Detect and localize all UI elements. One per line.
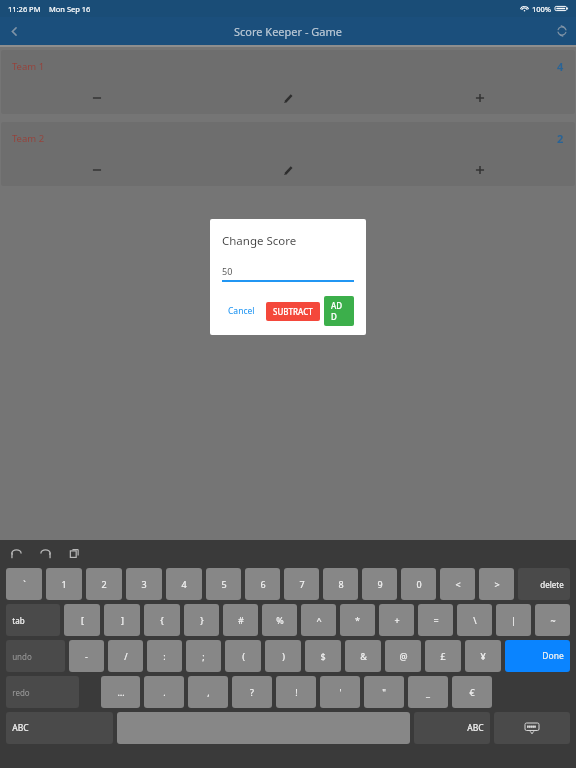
staticText: 50 bbox=[222, 265, 233, 277]
button[interactable]: Refresh bbox=[548, 17, 576, 45]
button[interactable]: $ bbox=[305, 640, 341, 672]
button[interactable]: £ bbox=[425, 640, 461, 672]
button[interactable]: 4 bbox=[166, 568, 202, 600]
button[interactable]: : bbox=[147, 640, 182, 672]
staticText: ; bbox=[202, 650, 205, 662]
button[interactable]: € bbox=[452, 676, 492, 708]
button[interactable]: 6 bbox=[245, 568, 280, 600]
button[interactable]: undo bbox=[6, 640, 65, 672]
button[interactable]: ] bbox=[104, 604, 140, 636]
staticText: delete bbox=[540, 579, 564, 590]
button[interactable]: ! bbox=[276, 676, 316, 708]
staticText: 6 bbox=[260, 578, 266, 590]
staticText: [ bbox=[81, 614, 84, 626]
staticText: 2 bbox=[101, 578, 107, 590]
button[interactable]: ' bbox=[320, 676, 360, 708]
button[interactable]: Done bbox=[505, 640, 570, 672]
button[interactable]: SUBTRACT bbox=[266, 302, 320, 321]
button[interactable]: ¥ bbox=[465, 640, 501, 672]
button[interactable]: 2 bbox=[86, 568, 122, 600]
button[interactable]: ABC bbox=[414, 712, 490, 744]
staticText: Team 2 bbox=[12, 132, 45, 145]
button[interactable]: } bbox=[184, 604, 219, 636]
staticText: % bbox=[276, 614, 284, 626]
staticText: { bbox=[160, 614, 164, 626]
staticText: $ bbox=[320, 650, 326, 662]
button[interactable]: @ bbox=[385, 640, 421, 672]
button[interactable]: { bbox=[144, 604, 180, 636]
staticText: 11:26 PM bbox=[8, 4, 41, 14]
staticText: ] bbox=[121, 614, 124, 626]
staticText: 3 bbox=[141, 578, 147, 590]
button[interactable]: + bbox=[379, 604, 414, 636]
button[interactable]: | bbox=[496, 604, 531, 636]
button[interactable]: * bbox=[340, 604, 375, 636]
button[interactable]: 5 bbox=[206, 568, 241, 600]
button[interactable]: > bbox=[479, 568, 514, 600]
button[interactable] bbox=[494, 712, 570, 744]
staticText: 5 bbox=[221, 578, 227, 590]
staticText: 100% bbox=[532, 4, 552, 14]
staticText: - bbox=[85, 650, 88, 662]
button[interactable]: ^ bbox=[301, 604, 336, 636]
button[interactable]: Edit bbox=[193, 82, 384, 114]
staticText: | bbox=[511, 614, 516, 626]
staticText: } bbox=[200, 614, 204, 626]
button[interactable]: " bbox=[364, 676, 404, 708]
button[interactable]: ? bbox=[232, 676, 272, 708]
staticText: , bbox=[207, 686, 210, 698]
button[interactable]: % bbox=[262, 604, 297, 636]
staticText: 8 bbox=[338, 578, 344, 590]
button[interactable]: 9 bbox=[362, 568, 397, 600]
button[interactable]: \ bbox=[457, 604, 492, 636]
button[interactable]: ( bbox=[225, 640, 261, 672]
button[interactable]: _ bbox=[408, 676, 448, 708]
button[interactable]: Add bbox=[384, 82, 575, 114]
staticText: ( bbox=[242, 650, 245, 662]
button[interactable]: 1 bbox=[46, 568, 82, 600]
button[interactable]: ABC bbox=[6, 712, 113, 744]
staticText: ^ bbox=[316, 614, 322, 626]
button[interactable]: 3 bbox=[126, 568, 162, 600]
button[interactable]: ) bbox=[265, 640, 301, 672]
button[interactable]: 8 bbox=[323, 568, 358, 600]
button[interactable]: , bbox=[188, 676, 228, 708]
button[interactable]: & bbox=[345, 640, 381, 672]
staticText: 4 bbox=[181, 578, 187, 590]
staticText: ADD bbox=[331, 300, 347, 322]
button[interactable]: # bbox=[223, 604, 258, 636]
staticText: ' bbox=[339, 686, 342, 698]
staticText: 7 bbox=[299, 578, 305, 590]
button[interactable]: . bbox=[144, 676, 184, 708]
button[interactable]: 0 bbox=[401, 568, 436, 600]
button[interactable]: 7 bbox=[284, 568, 319, 600]
staticText: . bbox=[163, 686, 166, 698]
staticText: tab bbox=[12, 615, 25, 626]
button[interactable]: ADD bbox=[324, 296, 354, 326]
button[interactable]: tab bbox=[6, 604, 60, 636]
button[interactable]: Back bbox=[0, 17, 28, 45]
button[interactable]: delete bbox=[518, 568, 570, 600]
button[interactable]: [ bbox=[64, 604, 100, 636]
button[interactable]: Cancel bbox=[222, 301, 261, 321]
button[interactable]: Add bbox=[384, 154, 575, 186]
staticText: 2 bbox=[557, 131, 564, 146]
button[interactable]: - bbox=[69, 640, 104, 672]
staticText: Cancel bbox=[228, 305, 255, 317]
button[interactable]: / bbox=[108, 640, 143, 672]
staticText: Team 1 bbox=[12, 60, 45, 73]
button[interactable]: = bbox=[418, 604, 453, 636]
button[interactable]: … bbox=[101, 676, 140, 708]
button[interactable]: < bbox=[440, 568, 475, 600]
button[interactable]: ; bbox=[186, 640, 221, 672]
staticText: 0 bbox=[416, 578, 422, 590]
button[interactable]: Edit bbox=[193, 154, 384, 186]
button[interactable]: ` bbox=[6, 568, 42, 600]
button[interactable]: ~ bbox=[535, 604, 570, 636]
button[interactable]: redo bbox=[6, 676, 79, 708]
